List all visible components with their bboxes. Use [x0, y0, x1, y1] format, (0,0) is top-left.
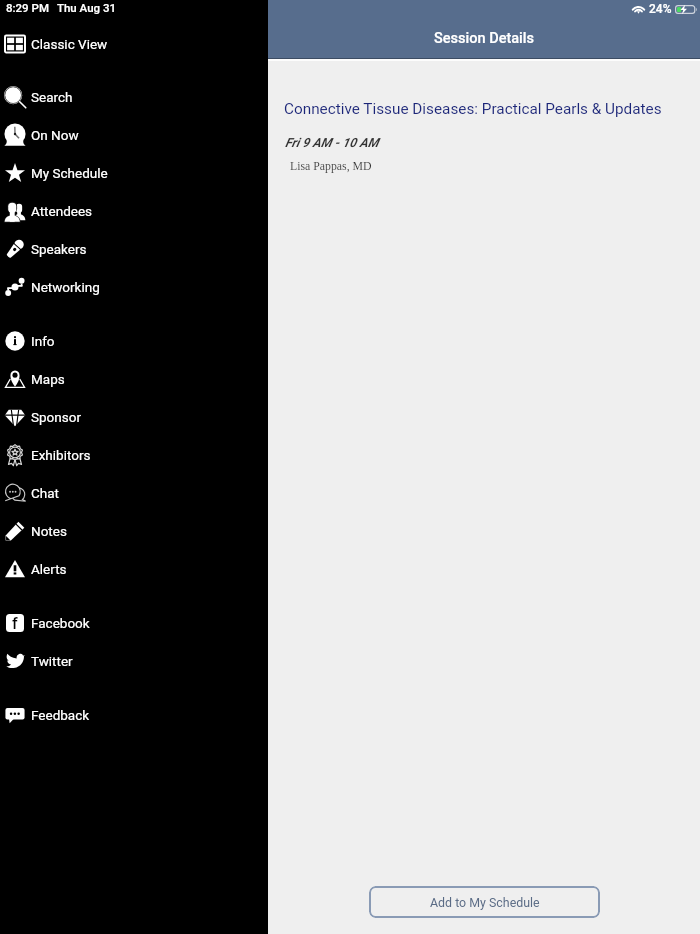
staticText: Attendees — [31, 203, 93, 219]
button[interactable]: f — [0, 604, 268, 642]
staticText: Twitter — [31, 653, 73, 669]
staticText: Search — [31, 89, 73, 105]
button[interactable]: Alerts — [0, 550, 268, 588]
button[interactable]: Speakers — [0, 230, 268, 268]
staticText: Session Details — [434, 30, 535, 47]
button[interactable]: Info — [0, 322, 268, 360]
staticText: Info — [31, 333, 55, 349]
button[interactable]: My Schedule — [0, 154, 268, 192]
staticText: 8:29 PM — [6, 1, 49, 14]
button[interactable]: Search — [0, 78, 268, 116]
staticText: My Schedule — [31, 165, 108, 181]
button[interactable]: Maps — [0, 360, 268, 398]
staticText: Sponsor — [31, 409, 81, 425]
staticText: Notes — [31, 523, 67, 539]
staticText: 24% — [649, 2, 672, 16]
staticText: Exhibitors — [31, 447, 91, 463]
staticText: Classic View — [31, 36, 108, 52]
button[interactable]: Networking — [0, 268, 268, 306]
staticText: Facebook — [31, 615, 90, 631]
button[interactable]: Add to My Schedule — [369, 886, 600, 918]
staticText: Add to My Schedule — [430, 895, 540, 910]
staticText: Lisa Pappas, MD — [290, 159, 372, 172]
button[interactable]: On Now — [0, 116, 268, 154]
button[interactable]: Notes — [0, 512, 268, 550]
staticText: Thu Aug 31 — [57, 1, 117, 14]
staticText: Maps — [31, 371, 65, 387]
staticText: Feedback — [31, 707, 90, 723]
button[interactable]: Attendees — [0, 192, 268, 230]
button[interactable]: Sponsor — [0, 398, 268, 436]
staticText: Connective Tissue Diseases: Practical Pe… — [284, 100, 662, 118]
staticText: f — [12, 614, 18, 632]
button[interactable]: Exhibitors — [0, 436, 268, 474]
staticText: Chat — [31, 485, 59, 501]
button[interactable]: Twitter — [0, 642, 268, 680]
staticText: Speakers — [31, 241, 87, 257]
staticText: Networking — [31, 279, 100, 295]
staticText: On Now — [31, 127, 79, 143]
button[interactable]: Feedback — [0, 696, 268, 734]
button[interactable]: Chat — [0, 474, 268, 512]
button[interactable]: Classic View — [0, 25, 268, 63]
staticText: Fri 9 AM - 10 AM — [285, 135, 379, 150]
staticText: Alerts — [31, 561, 67, 577]
